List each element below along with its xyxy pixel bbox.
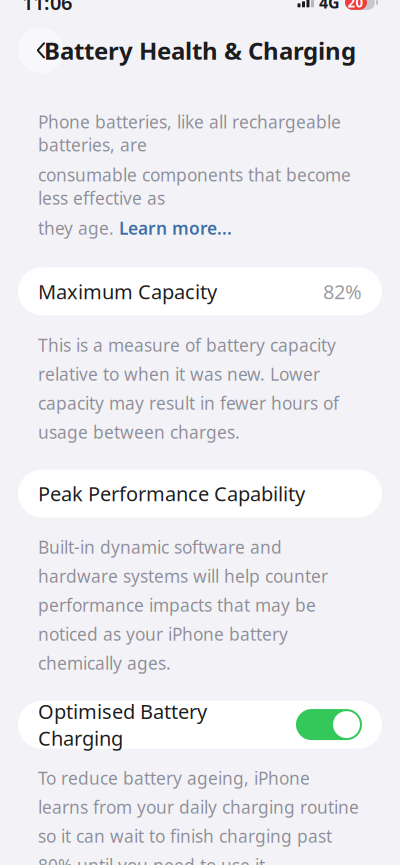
staticText: Battery Health & Charging (44, 34, 356, 66)
staticText: they age. (38, 216, 119, 239)
staticText: 82% (323, 278, 362, 305)
staticText: consumable components that become less e… (38, 163, 351, 209)
button[interactable]: Optimised Battery Charging (0, 701, 400, 749)
staticText: Phone batteries, like all rechargeable b… (38, 110, 341, 156)
staticText: 4G (319, 0, 340, 13)
button[interactable]: Peak Performance Capability (0, 469, 400, 517)
staticText: Built-in dynamic software and hardware s… (38, 535, 328, 675)
staticText: Maximum Capacity (38, 278, 217, 305)
button[interactable]: Back (18, 27, 64, 73)
staticText: 11:06 (22, 0, 72, 16)
staticText: 20 (347, 0, 363, 11)
staticText: Optimised Battery Charging (38, 698, 207, 751)
staticText: Learn more... (119, 216, 232, 239)
staticText: To reduce battery ageing, iPhone learns … (38, 767, 359, 865)
staticText: Peak Performance Capability (38, 480, 305, 507)
staticText: This is a measure of battery capacity re… (38, 333, 339, 443)
button[interactable]: Maximum Capacity (0, 267, 400, 315)
button[interactable]: Learn more... (119, 216, 232, 239)
